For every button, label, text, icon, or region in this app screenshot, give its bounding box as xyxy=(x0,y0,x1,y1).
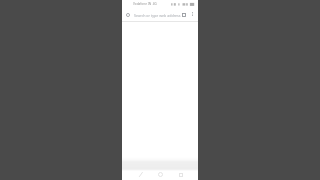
staticText: Search or type web address xyxy=(134,13,181,18)
button[interactable]: Search or type web address xyxy=(134,9,189,21)
button[interactable]: More options xyxy=(188,10,196,18)
button[interactable]: Site information xyxy=(123,10,132,19)
button[interactable]: Tabs xyxy=(179,10,188,19)
button[interactable]: Home xyxy=(154,168,167,180)
button[interactable]: Recent apps xyxy=(174,168,187,180)
button[interactable]: Back xyxy=(134,168,147,180)
staticText: Vodafone IN 4G xyxy=(133,2,157,6)
